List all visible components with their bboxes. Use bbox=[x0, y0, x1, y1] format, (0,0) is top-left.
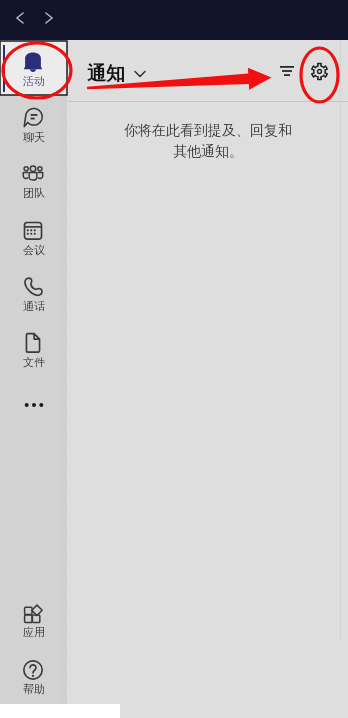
staticText: 活动 bbox=[23, 74, 45, 88]
staticText: 文件 bbox=[23, 355, 45, 369]
button[interactable]: More options bbox=[0, 388, 67, 422]
button[interactable]: Forward bbox=[38, 7, 60, 29]
button[interactable]: Settings bbox=[306, 58, 332, 84]
staticText: 会议 bbox=[23, 243, 45, 257]
button[interactable]: 通话 bbox=[0, 266, 67, 310]
button[interactable]: Back bbox=[9, 7, 31, 29]
button[interactable]: Filter bbox=[274, 58, 300, 84]
button[interactable]: 帮助 bbox=[0, 649, 67, 693]
button[interactable]: 团队 bbox=[0, 153, 67, 197]
staticText: 聊天 bbox=[23, 130, 45, 144]
button[interactable]: 会议 bbox=[0, 210, 67, 254]
button[interactable]: 应用 bbox=[0, 592, 67, 636]
staticText: 应用 bbox=[23, 625, 45, 639]
staticText: 通知 bbox=[87, 62, 125, 86]
staticText: 帮助 bbox=[23, 682, 45, 696]
button[interactable]: 通知 bbox=[87, 62, 147, 86]
staticText: 你将在此看到提及、回复和 其他通知。 bbox=[124, 122, 292, 160]
staticText: 团队 bbox=[23, 186, 45, 200]
button[interactable]: 聊天 bbox=[0, 97, 67, 141]
button[interactable]: 活动 bbox=[0, 41, 67, 95]
button[interactable]: 文件 bbox=[0, 322, 67, 366]
staticText: 通话 bbox=[23, 299, 45, 313]
